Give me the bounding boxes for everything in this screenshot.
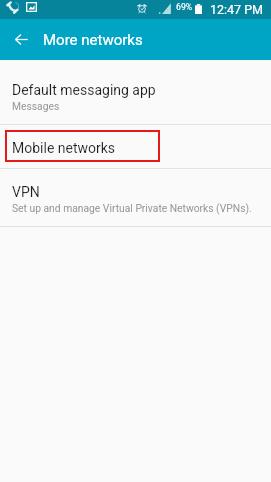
staticText: VPN bbox=[12, 184, 40, 200]
staticText: Default messaging app bbox=[12, 82, 156, 98]
button[interactable]: Navigate up bbox=[0, 19, 43, 60]
staticText: More networks bbox=[43, 31, 143, 49]
staticText: 12:47 PM bbox=[210, 2, 264, 17]
button[interactable]: VPN bbox=[0, 169, 271, 226]
button[interactable]: Mobile networks bbox=[0, 125, 271, 168]
staticText: Set up and manage Virtual Private Networ… bbox=[12, 202, 252, 214]
button[interactable]: Default messaging app bbox=[0, 60, 271, 124]
staticText: 69% bbox=[176, 2, 193, 12]
staticText: Mobile networks bbox=[12, 140, 116, 156]
staticText: Messages bbox=[12, 100, 60, 112]
